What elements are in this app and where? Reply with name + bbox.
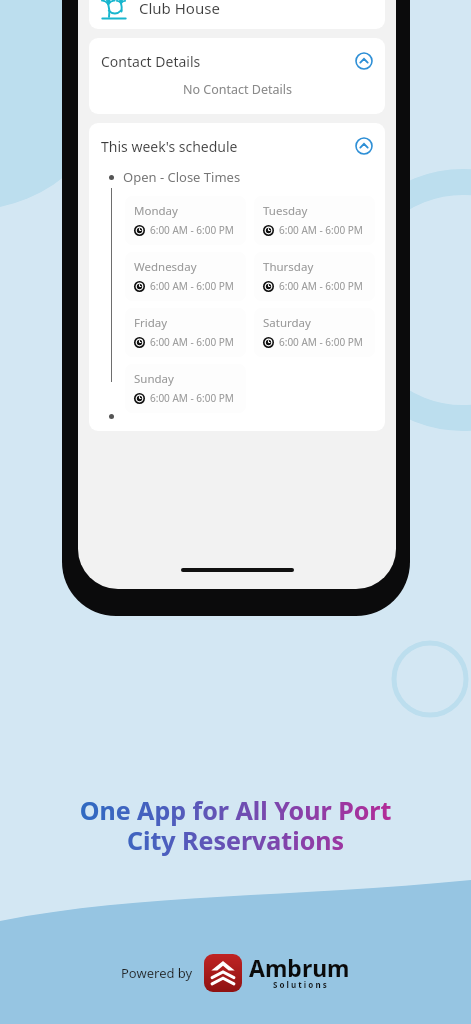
- other: Beach amenity: [101, 0, 127, 21]
- button[interactable]: This week's schedule: [89, 123, 385, 160]
- staticText: Ambrum: [249, 952, 350, 983]
- staticText: 6:00 AM - 6:00 PM: [150, 391, 234, 405]
- staticText: Monday: [134, 203, 178, 219]
- staticText: Thursday: [263, 259, 314, 275]
- staticText: Saturday: [263, 315, 311, 331]
- staticText: One App for All Your Port City Reservati…: [22, 793, 449, 857]
- button[interactable]: Wednesday: [125, 252, 246, 301]
- staticText: 6:00 AM - 6:00 PM: [150, 335, 234, 349]
- staticText: Tuesday: [263, 203, 308, 219]
- staticText: Wednesday: [134, 259, 197, 275]
- button[interactable]: Contact Details: [89, 38, 385, 75]
- staticText: Club House: [139, 0, 220, 18]
- staticText: S o l u t i o n s: [273, 979, 327, 990]
- staticText: 6:00 AM - 6:00 PM: [279, 279, 363, 293]
- button[interactable]: Friday: [125, 308, 246, 357]
- other: Ambrum Solutions logo: [204, 954, 242, 992]
- staticText: Friday: [134, 315, 168, 331]
- staticText: Powered by: [121, 964, 193, 982]
- button[interactable]: Collapse section: [354, 51, 374, 71]
- button[interactable]: Sunday: [125, 364, 246, 413]
- staticText: 6:00 AM - 6:00 PM: [279, 223, 363, 237]
- staticText: Contact Details: [101, 52, 201, 71]
- staticText: 6:00 AM - 6:00 PM: [150, 223, 234, 237]
- button[interactable]: Beach amenity: [89, 0, 385, 29]
- staticText: No Contact Details: [183, 81, 292, 98]
- button[interactable]: Thursday: [254, 252, 375, 301]
- staticText: 6:00 AM - 6:00 PM: [279, 335, 363, 349]
- staticText: This week's schedule: [101, 137, 238, 156]
- button[interactable]: Saturday: [254, 308, 375, 357]
- staticText: Open - Close Times: [123, 168, 241, 186]
- button[interactable]: Collapse section: [354, 136, 374, 156]
- button[interactable]: Powered by: [121, 952, 350, 994]
- button[interactable]: Monday: [125, 196, 246, 245]
- staticText: 6:00 AM - 6:00 PM: [150, 279, 234, 293]
- staticText: Sunday: [134, 371, 174, 387]
- button[interactable]: Tuesday: [254, 196, 375, 245]
